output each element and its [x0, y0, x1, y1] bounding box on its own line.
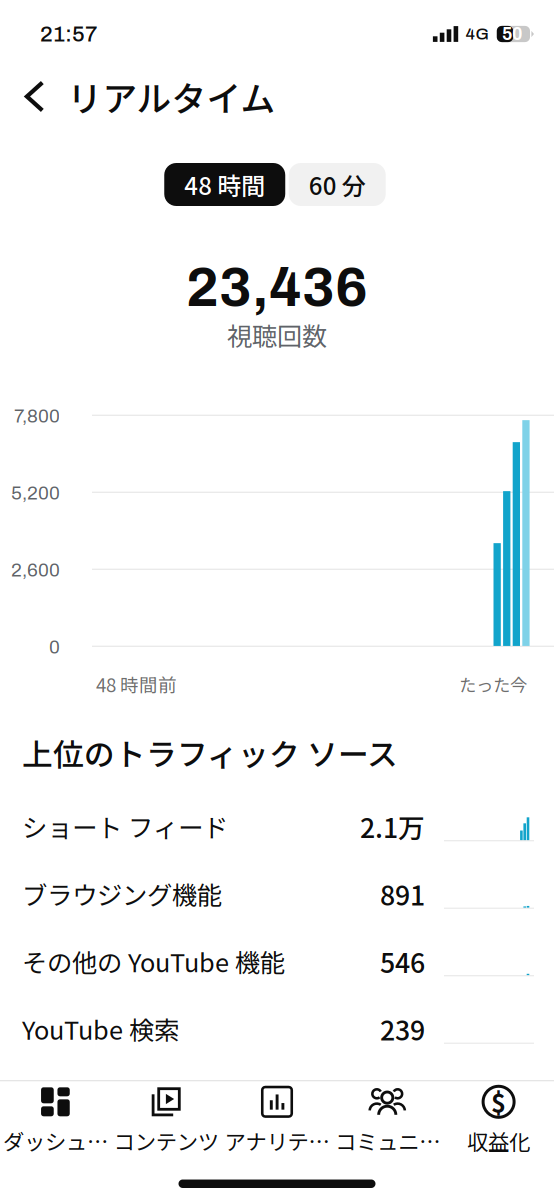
staticText: 48 時間前 — [96, 671, 177, 698]
staticText: ブラウジング機能 — [22, 875, 222, 912]
button[interactable]: YouTube 検索 — [0, 995, 554, 1063]
button[interactable]: ブラウジング機能 — [0, 860, 554, 928]
button[interactable]: ショート フィード — [0, 793, 554, 860]
staticText: 7,800 — [14, 406, 60, 426]
button[interactable]: $ — [443, 1086, 554, 1156]
staticText: アナリテ… — [224, 1125, 329, 1156]
button[interactable]: 戻る — [0, 69, 54, 123]
staticText: 視聴回数 — [227, 316, 327, 353]
staticText: 2.1万 — [360, 807, 425, 846]
staticText: YouTube 検索 — [22, 1010, 179, 1047]
button[interactable]: ダッシュ… — [0, 1086, 111, 1156]
staticText: 0 — [49, 637, 60, 657]
staticText: コミュニ… — [335, 1125, 440, 1156]
staticText: $ — [491, 1083, 506, 1120]
staticText: 収益化 — [467, 1125, 530, 1156]
staticText: 891 — [380, 874, 425, 913]
staticText: ショート フィード — [22, 808, 228, 845]
staticText: たった今 — [459, 672, 527, 697]
staticText: ダッシュ… — [3, 1125, 108, 1156]
staticText: 上位のトラフィック ソース — [22, 730, 398, 775]
staticText: 2,600 — [11, 560, 60, 580]
staticText: 48 時間 — [184, 167, 265, 202]
staticText: その他の YouTube 機能 — [22, 943, 285, 980]
button[interactable]: コミュニ… — [332, 1086, 443, 1156]
button[interactable]: アナリテ… — [222, 1086, 332, 1156]
button[interactable]: コンテンツ — [111, 1086, 222, 1156]
staticText: 239 — [380, 1009, 425, 1048]
staticText: 21:57 — [40, 22, 97, 46]
button[interactable]: その他の YouTube 機能 — [0, 928, 554, 995]
staticText: 4G — [466, 25, 489, 43]
staticText: 60 分 — [309, 167, 366, 202]
staticText: 546 — [380, 942, 425, 981]
staticText: コンテンツ — [114, 1125, 219, 1156]
staticText: 5,200 — [11, 483, 60, 503]
button[interactable]: 48 時間 — [164, 163, 285, 206]
staticText: 23,436 — [186, 258, 368, 317]
button[interactable]: 60 分 — [289, 163, 386, 206]
staticText: リアルタイム — [67, 71, 275, 122]
staticText: 50 — [502, 24, 522, 43]
